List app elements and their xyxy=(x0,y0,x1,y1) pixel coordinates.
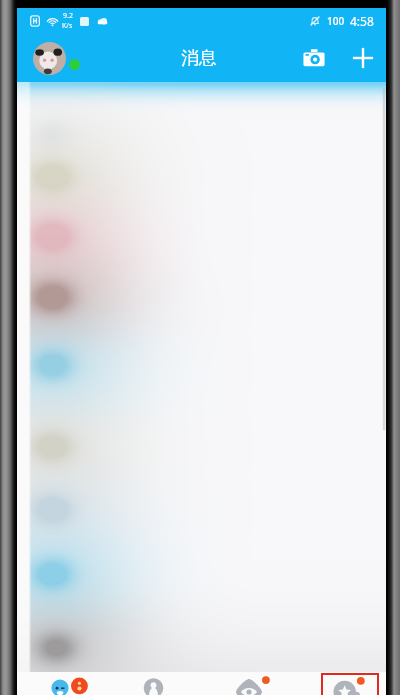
staticText: 消息 xyxy=(181,47,217,70)
staticText: 100 xyxy=(327,14,345,28)
button[interactable]: Me xyxy=(322,672,378,695)
button[interactable]: Discover xyxy=(227,672,275,695)
button[interactable]: Add xyxy=(347,42,379,74)
staticText: K/s xyxy=(62,21,73,31)
button[interactable]: Camera xyxy=(298,42,330,74)
staticText: 9.2 xyxy=(63,11,73,21)
button[interactable]: Profile xyxy=(32,41,66,75)
button[interactable]: Messages xyxy=(37,672,107,695)
staticText: 4:58 xyxy=(350,13,374,29)
button[interactable]: Contacts xyxy=(132,672,176,695)
